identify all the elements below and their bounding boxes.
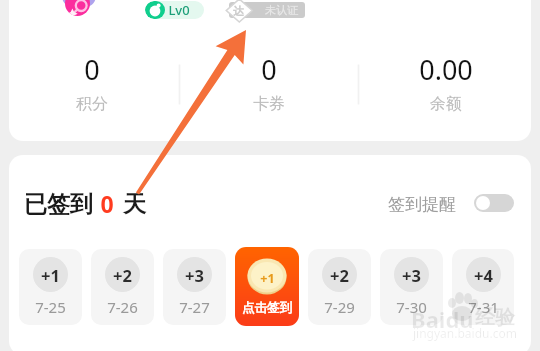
staticText: 7-27 (179, 297, 210, 317)
staticText: 0.00 (419, 51, 473, 88)
staticText: Lv0 (168, 1, 190, 19)
staticText: +1 (41, 264, 60, 286)
staticText: 卡券 (253, 94, 285, 114)
button[interactable]: Lv0 (145, 1, 204, 19)
button[interactable]: +4 (452, 249, 514, 325)
staticText: 积分 (76, 94, 108, 114)
staticText: 余额 (430, 94, 462, 114)
staticText: 已签到 (24, 190, 93, 219)
staticText: 点击签到 (242, 300, 292, 316)
button[interactable]: 未认证 (229, 2, 305, 18)
staticText: 7-30 (396, 297, 427, 317)
staticText: 7-29 (324, 297, 355, 317)
button[interactable]: +3 (380, 249, 443, 325)
button[interactable]: +1 (235, 247, 299, 326)
staticText: +3 (402, 264, 421, 286)
staticText: Baidu (411, 304, 474, 334)
staticText: 未认证 (265, 3, 298, 17)
staticText: 达 (233, 4, 244, 18)
staticText: +2 (113, 264, 132, 286)
staticText: +2 (330, 264, 349, 286)
staticText: 7-26 (107, 297, 138, 317)
staticText: 7-25 (35, 297, 66, 317)
staticText: 0 (261, 51, 277, 88)
button[interactable]: +3 (163, 249, 226, 325)
staticText: 7-31 (468, 297, 499, 317)
button[interactable]: +2 (91, 249, 154, 325)
button[interactable]: 0 (3, 51, 180, 114)
staticText: jingyan.baidu.com (413, 325, 517, 341)
staticText: +3 (185, 264, 204, 286)
button[interactable]: +1 (19, 249, 82, 325)
button[interactable]: 0.00 (357, 51, 534, 114)
button[interactable]: 头像 (65, 0, 90, 16)
staticText: +4 (474, 264, 493, 286)
staticText: 签到提醒 (388, 194, 456, 215)
staticText: 0 (84, 51, 100, 88)
staticText: +1 (260, 270, 275, 287)
staticText: 经验 (475, 305, 515, 330)
button[interactable]: +2 (308, 249, 371, 325)
staticText: 0 (100, 188, 114, 219)
button[interactable]: 签到提醒开关 (474, 194, 514, 212)
button[interactable]: 0 (180, 51, 357, 114)
staticText: 天 (123, 190, 146, 219)
